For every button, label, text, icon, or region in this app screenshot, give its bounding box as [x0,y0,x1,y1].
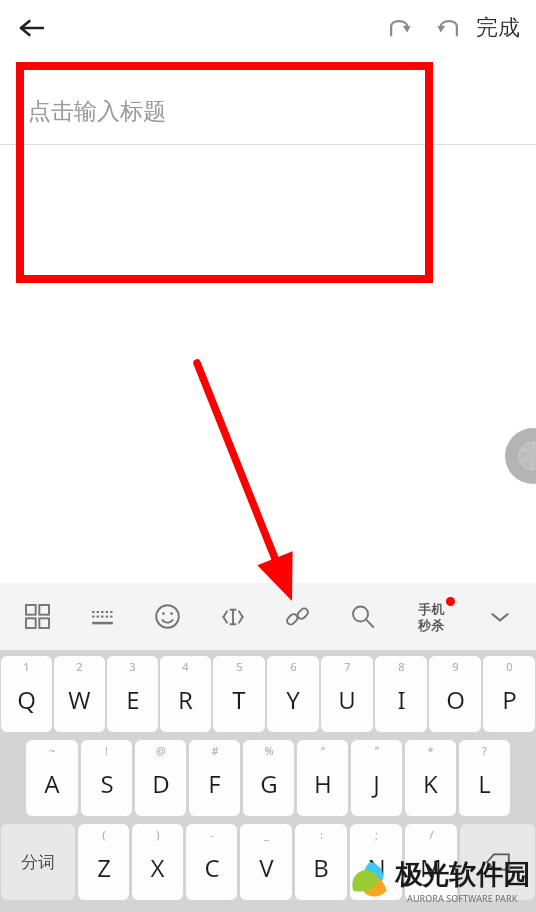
staticText: S [100,767,114,800]
staticText: P [502,683,517,716]
button[interactable]: 7 [321,656,373,732]
button[interactable]: 0 [483,656,535,732]
staticText: Y [286,683,300,716]
button[interactable]: Emoji [135,583,200,650]
staticText: F [208,767,221,800]
staticText: 1 [23,659,30,674]
button[interactable]: “ [297,740,348,816]
staticText: : [320,827,323,842]
staticText: G [260,767,278,800]
staticText: 极光软件园 [395,858,530,892]
staticText: “ [321,743,325,758]
button[interactable]: / [405,824,457,900]
button[interactable]: ! [81,740,132,816]
staticText: 0 [506,659,513,674]
staticText: 分词 [21,852,55,873]
staticText: N [367,851,386,884]
staticText: - [210,827,214,842]
button[interactable]: Back [8,4,56,52]
button[interactable]: Redo [424,5,470,51]
button[interactable]: 完成 [476,14,520,42]
staticText: / [429,827,434,842]
staticText: ” [375,743,379,758]
staticText: W [68,683,91,716]
button[interactable]: 手机 [395,583,467,650]
staticText: 手机 [418,601,444,617]
button[interactable]: Search [330,583,395,650]
button[interactable]: ; [350,824,402,900]
staticText: E [126,683,140,716]
button[interactable]: # [189,740,240,816]
staticText: @ [156,743,166,758]
button[interactable]: 4 [160,656,211,732]
button[interactable]: Link [265,583,330,650]
staticText: ) [156,827,160,842]
staticText: Z [97,851,111,884]
staticText: # [211,743,219,758]
staticText: * [427,743,434,758]
button[interactable]: 9 [429,656,481,732]
staticText: 5 [236,659,243,674]
staticText: 9 [452,659,459,674]
staticText: T [232,683,246,716]
staticText: 8 [398,659,405,674]
button[interactable]: - [186,824,237,900]
staticText: % [264,743,274,758]
staticText: D [152,767,170,800]
staticText: ! [105,743,108,758]
button[interactable]: 8 [375,656,427,732]
staticText: ~ [49,743,56,758]
button[interactable]: 5 [213,656,265,732]
staticText: U [338,683,356,716]
button[interactable]: Backspace [460,824,535,900]
staticText: 7 [344,659,351,674]
button[interactable]: _ [240,824,292,900]
button[interactable]: 6 [267,656,319,732]
staticText: ; [375,827,378,842]
button[interactable]: Keyboard [70,583,135,650]
staticText: 3 [129,659,136,674]
staticText: B [313,851,329,884]
staticText: M [420,851,442,884]
button[interactable]: ” [351,740,402,816]
button[interactable]: Apps [4,583,70,650]
button[interactable]: 分词 [1,824,75,900]
button[interactable]: ) [132,824,183,900]
staticText: 2 [76,659,83,674]
button[interactable]: Cursor [200,583,265,650]
staticText: 6 [290,659,297,674]
button[interactable]: 2 [54,656,105,732]
button[interactable]: 3 [107,656,158,732]
button[interactable]: ( [78,824,129,900]
button[interactable]: Undo [378,5,424,51]
button[interactable]: 点击输入标题 [28,97,166,126]
staticText: K [423,767,438,800]
button[interactable]: : [295,824,347,900]
staticText: Q [17,683,36,716]
staticText: 完成 [476,14,520,42]
staticText: 4 [182,659,189,674]
button[interactable]: ~ [26,740,78,816]
button[interactable]: @ [135,740,186,816]
button[interactable]: * [405,740,456,816]
staticText: AURORA SOFTWARE PARK [407,892,518,904]
staticText: C [204,851,220,884]
staticText: R [178,683,193,716]
button[interactable]: Collapse keyboard [467,583,532,650]
button[interactable]: % [243,740,294,816]
button[interactable]: ? [459,740,510,816]
button[interactable]: 1 [1,656,52,732]
staticText: O [446,683,465,716]
staticText: H [314,767,332,800]
staticText: ? [482,743,487,758]
button[interactable]: Camera [505,428,536,484]
staticText: ( [102,827,106,842]
staticText: J [373,767,380,800]
staticText: I [397,683,406,716]
staticText: X [150,851,165,884]
staticText: _ [264,827,269,842]
staticText: L [478,767,491,800]
staticText: A [44,767,60,800]
staticText: 秒杀 [418,617,444,633]
staticText: V [259,851,274,884]
